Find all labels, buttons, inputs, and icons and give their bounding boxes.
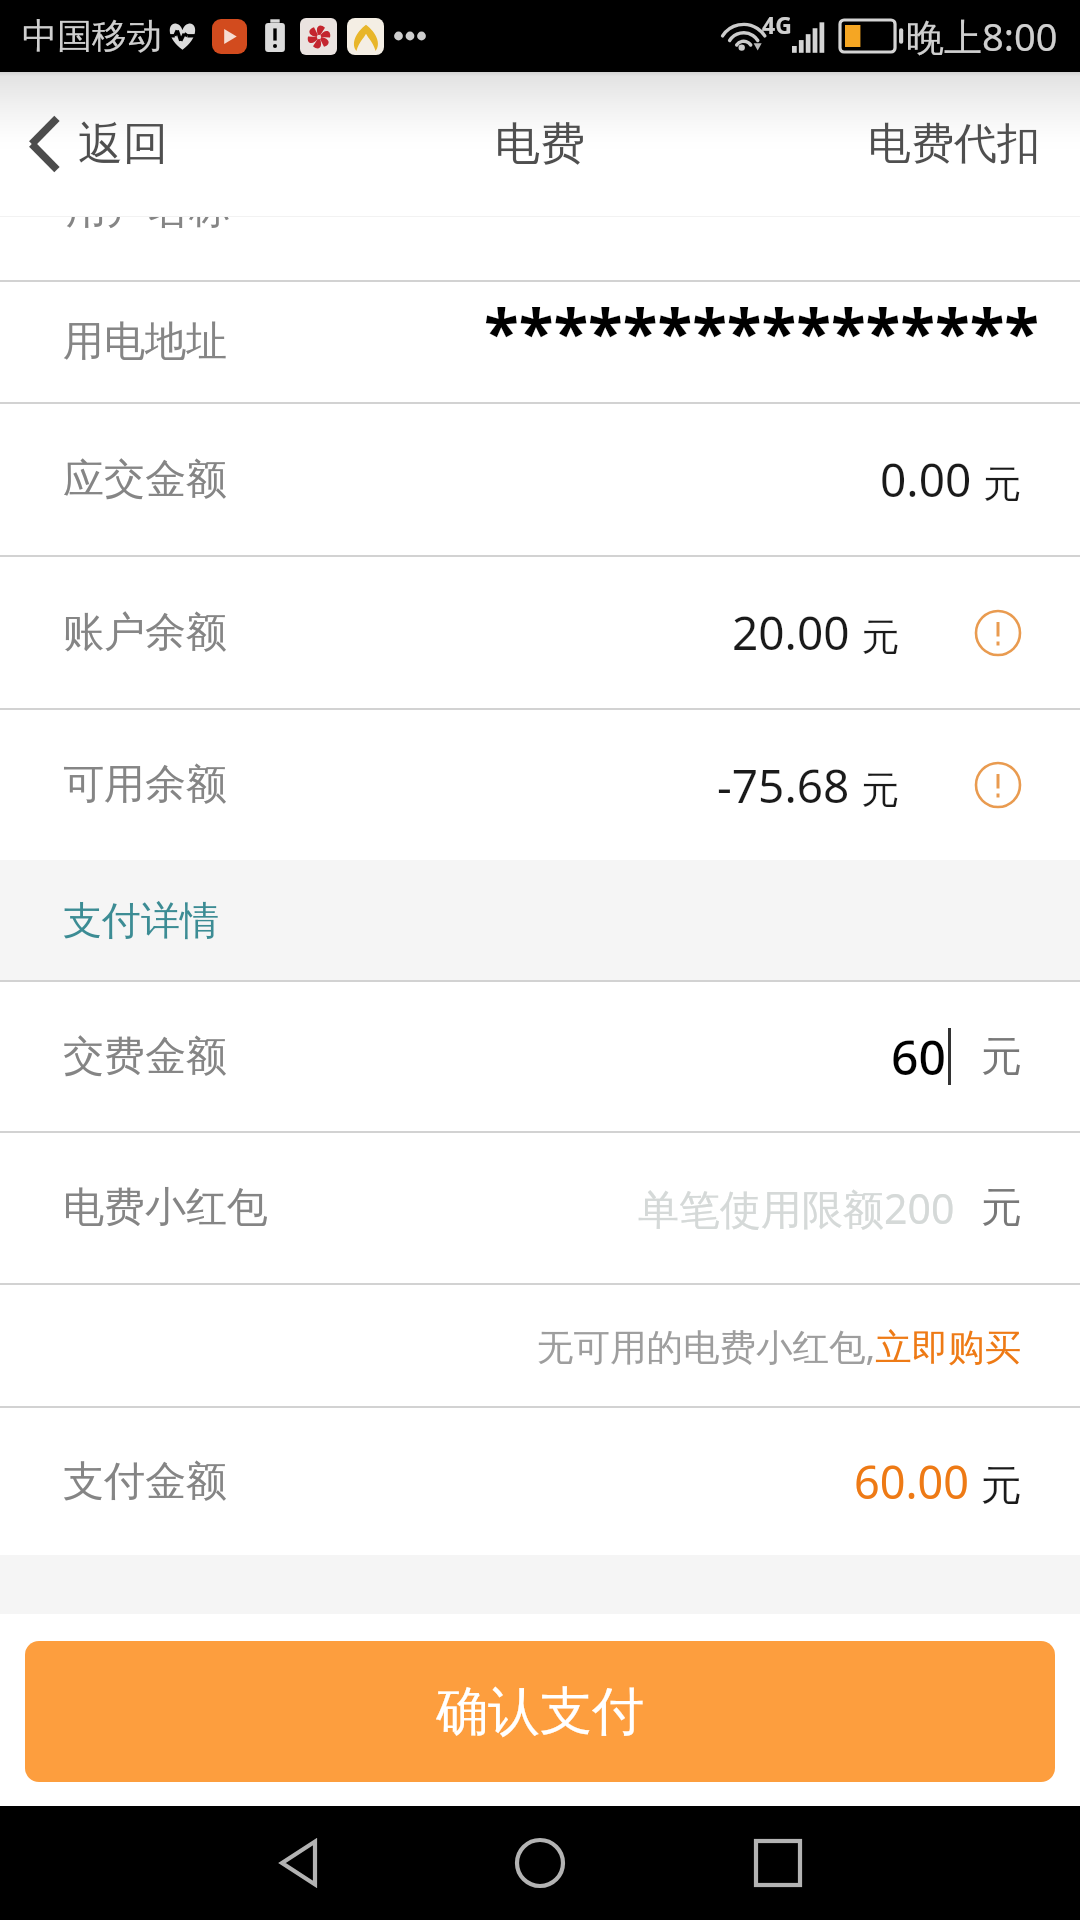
- staticText: 支付详情: [63, 896, 219, 945]
- staticText: 4G: [762, 9, 792, 40]
- button[interactable]: 返回: [0, 101, 190, 187]
- staticText: 0.00 元: [880, 448, 1022, 511]
- staticText: -75.68 元: [717, 754, 900, 817]
- staticText: 60.00 元: [854, 1451, 1022, 1512]
- staticText: ****************: [484, 288, 1040, 375]
- staticText: 60: [891, 1024, 946, 1089]
- staticText: 应交金额: [63, 454, 227, 506]
- staticText: 元: [981, 1182, 1022, 1234]
- button[interactable]: 支付金额: [0, 1408, 1080, 1555]
- button[interactable]: Home: [485, 1808, 595, 1918]
- button[interactable]: 电费代扣: [838, 97, 1080, 191]
- staticText: 单笔使用限额200: [638, 1180, 955, 1236]
- button[interactable]: 账户余额: [0, 557, 1080, 708]
- staticText: 晚上8:00: [906, 10, 1058, 62]
- staticText: 电费代扣: [868, 117, 1040, 171]
- staticText: 元: [981, 1031, 1022, 1083]
- staticText: 交费金额: [63, 1031, 227, 1083]
- staticText: 支付金额: [63, 1456, 227, 1508]
- button[interactable]: 用电地址: [0, 282, 1080, 402]
- staticText: 电费小红包: [63, 1182, 268, 1234]
- staticText: 用户名称: [66, 184, 230, 236]
- button[interactable]: Back: [245, 1808, 355, 1918]
- button[interactable]: 可用余额: [0, 710, 1080, 860]
- button[interactable]: 交费金额: [0, 982, 1080, 1131]
- button[interactable]: 支付详情: [0, 860, 1080, 980]
- staticText: 返回: [78, 116, 168, 173]
- staticText: 无可用的电费小红包,立即购买: [537, 1321, 1022, 1371]
- button[interactable]: 应交金额: [0, 404, 1080, 555]
- staticText: 确认支付: [436, 1679, 644, 1745]
- button[interactable]: 确认支付: [25, 1641, 1055, 1782]
- staticText: 账户余额: [63, 607, 227, 659]
- staticText: 20.00 元: [732, 601, 900, 664]
- staticText: 用电地址: [63, 316, 227, 368]
- staticText: 中国移动: [22, 14, 162, 58]
- button[interactable]: 无可用的电费小红包,立即购买: [0, 1285, 1080, 1406]
- button[interactable]: 电费小红包: [0, 1133, 1080, 1283]
- staticText: 可用余额: [63, 759, 227, 811]
- staticText: 电费: [495, 116, 585, 173]
- button[interactable]: Recents: [723, 1808, 833, 1918]
